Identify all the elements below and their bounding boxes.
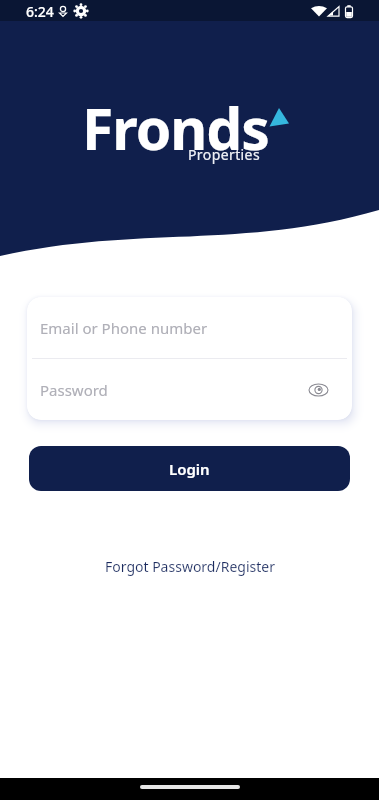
staticText: Email or Phone number <box>40 318 208 338</box>
staticText: Password <box>40 380 108 400</box>
button[interactable]: Email or Phone number <box>27 297 352 358</box>
staticText: Login <box>169 459 210 479</box>
staticText: Fronds <box>82 89 269 167</box>
button[interactable]: Password <box>27 359 352 420</box>
button[interactable]: Login <box>29 446 350 491</box>
staticText: Properties <box>188 145 260 164</box>
staticText: 6:24 <box>26 2 54 21</box>
button[interactable]: Forgot Password/Register <box>105 557 275 576</box>
